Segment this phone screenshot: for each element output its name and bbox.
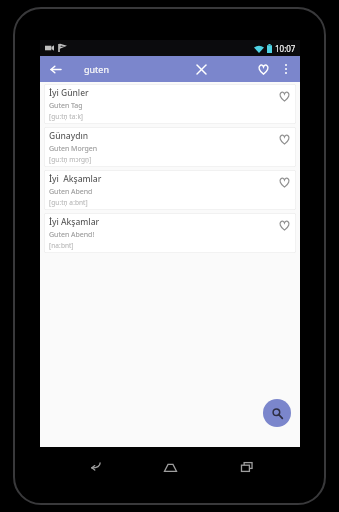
button[interactable]: İyi Günler [44,84,296,124]
button[interactable]: Back [71,450,117,484]
staticText: İyi Günler [49,87,89,99]
button[interactable]: Recent apps [224,450,270,484]
staticText: İyi Akşamlar [49,173,102,185]
button[interactable]: Navigate up [44,58,66,80]
button[interactable]: Search [263,399,291,427]
staticText: Guten Morgen [49,144,98,154]
button[interactable]: Add to favorites [275,173,293,191]
button[interactable]: Clear query [190,58,212,80]
staticText: Günaydın [49,130,89,142]
button[interactable]: Add to favorites [275,87,293,105]
button[interactable]: İyi Akşamlar [44,170,296,210]
button[interactable]: Add to favorites [275,216,293,234]
staticText: guten [84,63,109,75]
staticText: Guten Abend [49,187,93,197]
button[interactable]: Home [147,450,193,484]
staticText: 10:07 [275,43,296,54]
staticText: [guːtn̩ mɔrgn̩] [49,155,92,164]
staticText: [guːtn̩ taːk] [49,112,83,121]
button[interactable]: İyi Akşamlar [44,213,296,253]
staticText: Guten Abend! [49,230,95,240]
button[interactable]: Günaydın [44,127,296,167]
button[interactable]: Favorites [252,58,274,80]
staticText: [guːtn̩ aːbnt] [49,198,88,207]
button[interactable]: More options [277,60,295,78]
button[interactable]: Add to favorites [275,130,293,148]
staticText: [naːbnt] [49,241,74,250]
staticText: Guten Tag [49,101,83,111]
staticText: İyi Akşamlar [49,216,100,228]
